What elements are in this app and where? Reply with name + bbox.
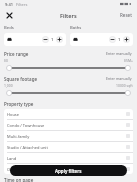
button[interactable]: Decrease Baths <box>70 33 133 46</box>
button[interactable]: Enter manually <box>105 50 133 57</box>
button[interactable]: Other <box>4 164 133 174</box>
staticText: Condo / Townhouse <box>7 123 45 128</box>
staticText: Enter manually <box>106 76 132 81</box>
staticText: Filters <box>16 2 28 7</box>
button[interactable] <box>4 89 133 97</box>
staticText: Property type <box>4 101 34 107</box>
staticText: 1,000 <box>4 83 13 88</box>
button[interactable]: Decrease Beds <box>42 36 49 43</box>
button[interactable]: Decrease Beds <box>4 33 66 46</box>
staticText: Filters <box>60 12 77 19</box>
staticText: Apply filters <box>55 168 82 174</box>
staticText: 1 <box>118 37 121 43</box>
staticText: Land <box>7 156 17 161</box>
staticText: $0 <box>4 58 8 63</box>
staticText: Reset <box>120 12 132 18</box>
button[interactable]: Increase Beds <box>56 36 63 43</box>
button[interactable]: Reset <box>119 10 133 20</box>
button[interactable]: Close <box>4 10 14 20</box>
button[interactable]: Increase Baths <box>123 36 130 43</box>
button[interactable]: Condo / Townhouse <box>4 120 133 130</box>
staticText: Baths <box>70 25 82 31</box>
button[interactable]: House <box>4 109 133 119</box>
staticText: Studio / Attached unit <box>7 145 48 150</box>
staticText: $5M+ <box>124 58 133 63</box>
button[interactable]: Enter manually <box>105 75 133 82</box>
staticText: 1 <box>51 37 54 43</box>
button[interactable]: Studio / Attached unit <box>4 142 133 152</box>
staticText: 10000 sqft <box>116 83 133 88</box>
button[interactable] <box>4 64 133 72</box>
staticText: Other <box>7 167 18 172</box>
button[interactable]: Decrease Baths <box>109 36 116 43</box>
staticText: Beds <box>4 25 14 31</box>
staticText: Square footage <box>4 76 38 82</box>
button[interactable]: Apply filters <box>10 165 127 176</box>
staticText: 9:41 <box>5 2 13 7</box>
button[interactable]: Land <box>4 153 133 163</box>
staticText: Enter manually <box>106 51 132 56</box>
staticText: Time on page <box>4 177 34 182</box>
button[interactable]: Multi-family <box>4 131 133 141</box>
staticText: Price range <box>4 51 29 57</box>
staticText: House <box>7 112 20 117</box>
staticText: Multi-family <box>7 134 30 139</box>
